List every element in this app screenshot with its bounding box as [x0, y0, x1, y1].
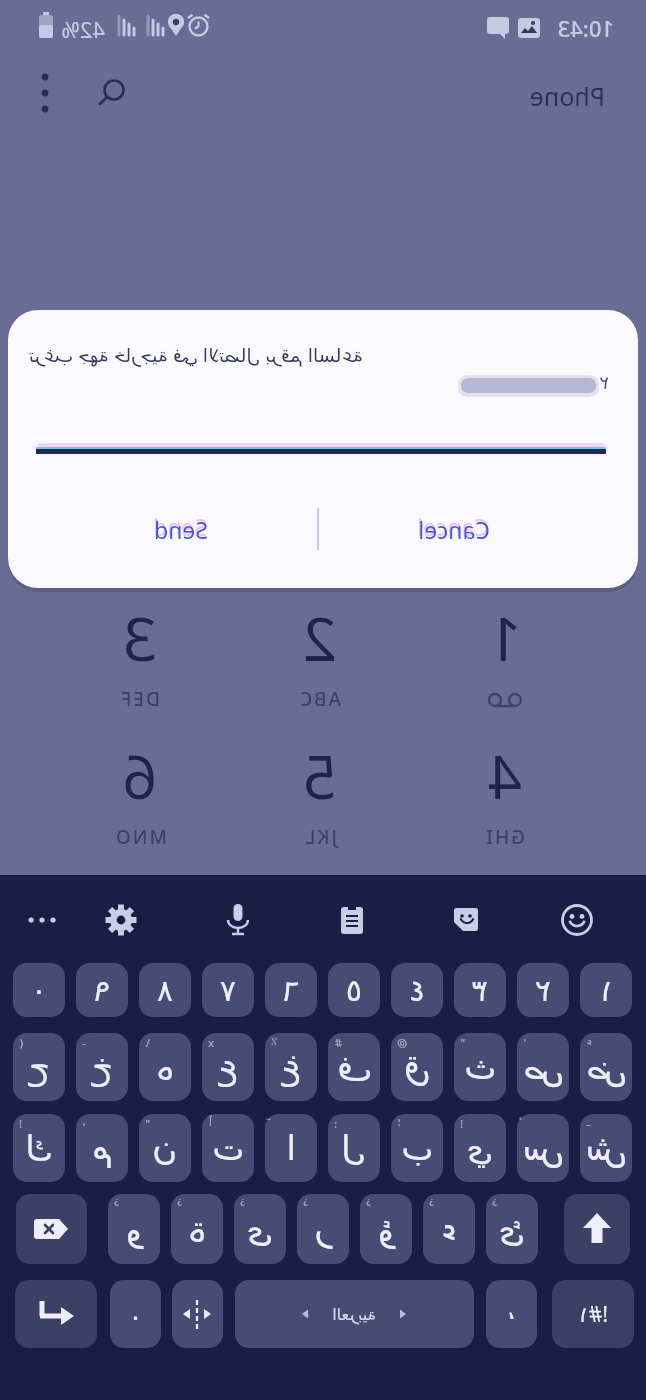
- staticText: 2: [302, 597, 337, 677]
- staticText: Cancel: [417, 511, 489, 542]
- staticText: ض: [585, 1047, 627, 1087]
- staticText: ذ: [114, 1196, 119, 1209]
- staticText: ٢: [599, 372, 609, 393]
- button[interactable]: ك: [13, 1114, 65, 1182]
- button[interactable]: [216, 898, 260, 942]
- button[interactable]: ٤: [391, 963, 443, 1017]
- staticText: 1: [487, 597, 522, 677]
- button[interactable]: ض: [580, 1033, 632, 1101]
- staticText: ذ: [429, 1196, 434, 1209]
- staticText: ذ: [177, 1196, 182, 1209]
- staticText: خ: [91, 1047, 113, 1087]
- button[interactable]: ٨: [139, 963, 191, 1017]
- button[interactable]: ٥: [328, 963, 380, 1017]
- staticText: ": [460, 1035, 465, 1050]
- button[interactable]: ع: [202, 1033, 254, 1101]
- staticText: GHI: [484, 824, 525, 850]
- button[interactable]: ،: [486, 1280, 537, 1348]
- staticText: ٢: [534, 973, 551, 1008]
- staticText: 5: [302, 735, 337, 815]
- button[interactable]: ح: [13, 1033, 65, 1101]
- button[interactable]: ث: [454, 1033, 506, 1101]
- staticText: ء: [441, 1209, 457, 1249]
- button[interactable]: [555, 898, 599, 942]
- staticText: ١: [597, 973, 614, 1008]
- button[interactable]: ص: [517, 1033, 569, 1101]
- button[interactable]: م: [76, 1114, 128, 1182]
- button[interactable]: ٢: [517, 963, 569, 1017]
- button[interactable]: ة: [171, 1194, 223, 1264]
- staticText: ': [523, 1035, 526, 1050]
- button[interactable]: ن: [139, 1114, 191, 1182]
- staticText: ترغب جهة خارجية في الاتصال برقم الساعة: [28, 342, 363, 368]
- staticText: ،: [82, 1116, 86, 1129]
- button[interactable]: Send: [113, 506, 249, 552]
- button[interactable]: ب: [391, 1114, 443, 1182]
- button[interactable]: ف: [328, 1033, 380, 1101]
- button[interactable]: ء: [423, 1194, 475, 1264]
- button[interactable]: ى: [234, 1194, 286, 1264]
- button[interactable]: و: [108, 1194, 160, 1264]
- button[interactable]: ٣: [454, 963, 506, 1017]
- staticText: ع: [217, 1047, 238, 1087]
- staticText: ٠: [30, 973, 47, 1008]
- button[interactable]: .: [110, 1280, 161, 1348]
- button[interactable]: Cancel: [386, 506, 522, 552]
- button[interactable]: [22, 898, 62, 942]
- button[interactable]: [16, 1194, 87, 1264]
- button[interactable]: [15, 1280, 97, 1348]
- button[interactable]: [88, 70, 134, 116]
- button[interactable]: [564, 1194, 630, 1264]
- button[interactable]: [172, 1280, 223, 1348]
- button[interactable]: العربية: [235, 1280, 474, 1348]
- staticText: ك: [24, 1128, 53, 1168]
- staticText: 4: [487, 735, 522, 815]
- button[interactable]: ٩: [76, 963, 128, 1017]
- button[interactable]: Phone: [529, 79, 605, 113]
- staticText: ؤ: [377, 1209, 394, 1249]
- staticText: العربية: [332, 1305, 376, 1324]
- button[interactable]: !#١: [552, 1280, 634, 1348]
- button[interactable]: ٠: [13, 963, 65, 1017]
- staticText: ء: [586, 1035, 592, 1048]
- button[interactable]: [444, 898, 488, 942]
- staticText: ٤: [408, 973, 425, 1008]
- button[interactable]: ر: [297, 1194, 349, 1264]
- staticText: !: [460, 1116, 463, 1131]
- staticText: ٧: [219, 973, 236, 1008]
- button[interactable]: خ: [76, 1033, 128, 1101]
- button[interactable]: [22, 70, 68, 116]
- button[interactable]: غ: [265, 1033, 317, 1101]
- staticText: ٦: [282, 973, 299, 1008]
- button[interactable]: ه: [139, 1033, 191, 1101]
- button[interactable]: ؤ: [360, 1194, 412, 1264]
- button[interactable]: ٦: [265, 963, 317, 1017]
- button[interactable]: ١: [580, 963, 632, 1017]
- staticText: :: [334, 1116, 337, 1131]
- button[interactable]: ش: [580, 1114, 632, 1182]
- staticText: ـ: [586, 1116, 590, 1129]
- staticText: ذ: [492, 1196, 497, 1209]
- staticText: ن: [152, 1128, 177, 1168]
- staticText: أ: [208, 1116, 212, 1129]
- staticText: ٣: [471, 973, 488, 1008]
- staticText: x: [208, 1035, 214, 1050]
- button[interactable]: [99, 898, 143, 942]
- staticText: ٥: [345, 973, 362, 1008]
- staticText: ه: [156, 1047, 174, 1087]
- button[interactable]: ي: [454, 1114, 506, 1182]
- staticText: ق: [403, 1047, 430, 1087]
- staticText: ذ: [366, 1196, 371, 1209]
- button[interactable]: [330, 898, 374, 942]
- button[interactable]: ئ: [486, 1194, 538, 1264]
- button[interactable]: ق: [391, 1033, 443, 1101]
- button[interactable]: س: [517, 1114, 569, 1182]
- button[interactable]: ل: [328, 1114, 380, 1182]
- staticText: ت: [211, 1128, 244, 1168]
- button[interactable]: ٧: [202, 963, 254, 1017]
- button[interactable]: ا: [265, 1114, 317, 1182]
- staticText: ؛: [397, 1116, 401, 1129]
- staticText: MNO: [113, 824, 167, 850]
- staticText: ٨: [156, 973, 173, 1008]
- button[interactable]: ت: [202, 1114, 254, 1182]
